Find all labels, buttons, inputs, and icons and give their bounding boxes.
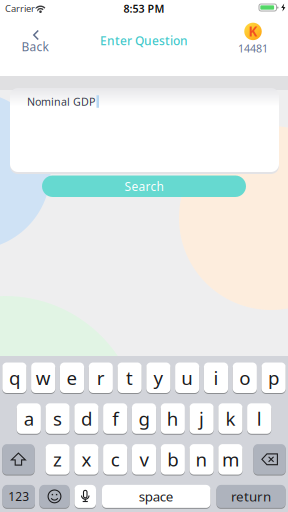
button[interactable]: return <box>216 484 285 508</box>
staticText: w <box>36 365 51 390</box>
button[interactable]: p <box>261 362 286 393</box>
staticText: 14481 <box>238 41 268 55</box>
button[interactable]: n <box>189 444 214 475</box>
staticText: k <box>225 406 235 431</box>
staticText: x <box>81 447 91 472</box>
button[interactable] <box>253 444 286 475</box>
button[interactable]: y <box>146 362 170 393</box>
button[interactable]: k <box>218 403 242 434</box>
staticText: Enter Question <box>100 32 188 48</box>
staticText: l <box>257 406 262 431</box>
staticText: j <box>199 406 204 431</box>
staticText: i <box>213 365 218 390</box>
staticText: m <box>222 447 239 472</box>
button[interactable]: m <box>218 444 242 475</box>
staticText: d <box>81 406 92 431</box>
button[interactable]: h <box>161 403 185 434</box>
button[interactable]: a <box>17 403 41 434</box>
button[interactable]: g <box>132 403 156 434</box>
staticText: Carrier <box>5 2 35 15</box>
button[interactable]: e <box>60 362 84 393</box>
button[interactable]: space <box>102 484 210 508</box>
staticText: b <box>167 447 178 472</box>
staticText: y <box>153 365 163 390</box>
staticText: Search <box>124 178 163 194</box>
staticText: space <box>139 487 174 505</box>
button[interactable]: Nominal GDP <box>10 88 279 172</box>
button[interactable]: u <box>175 362 199 393</box>
button[interactable]: q <box>2 362 26 393</box>
button[interactable]: s <box>45 403 70 434</box>
staticText: u <box>181 365 193 390</box>
staticText: e <box>66 365 77 390</box>
button[interactable]: K <box>235 24 271 54</box>
staticText: Nominal GDP <box>27 94 95 109</box>
button[interactable] <box>74 484 96 508</box>
button[interactable]: x <box>74 444 98 475</box>
staticText: o <box>239 365 250 390</box>
button[interactable]: Search <box>42 175 246 197</box>
button[interactable]: d <box>74 403 98 434</box>
staticText: Back <box>21 38 48 54</box>
button[interactable]: o <box>233 362 257 393</box>
button[interactable]: r <box>89 362 113 393</box>
staticText: z <box>53 447 62 472</box>
button[interactable]: w <box>31 362 55 393</box>
button[interactable]: c <box>103 444 127 475</box>
button[interactable]: j <box>189 403 214 434</box>
staticText: f <box>112 406 118 431</box>
button[interactable]: z <box>45 444 70 475</box>
staticText: c <box>111 447 120 472</box>
button[interactable]: 123 <box>2 484 35 508</box>
staticText: n <box>196 447 208 472</box>
staticText: K <box>248 23 257 40</box>
button[interactable] <box>39 484 69 508</box>
button[interactable]: f <box>103 403 127 434</box>
staticText: r <box>97 365 105 390</box>
button[interactable]: b <box>161 444 185 475</box>
button[interactable]: Back <box>11 27 59 54</box>
button[interactable]: l <box>247 403 271 434</box>
staticText: return <box>231 487 271 505</box>
button[interactable]: t <box>117 362 142 393</box>
staticText: g <box>138 406 149 431</box>
staticText: p <box>268 365 279 390</box>
staticText: a <box>24 406 34 431</box>
staticText: s <box>53 406 62 431</box>
staticText: q <box>9 365 20 390</box>
button[interactable]: v <box>132 444 156 475</box>
button[interactable] <box>2 444 35 475</box>
staticText: h <box>167 406 179 431</box>
button[interactable]: i <box>204 362 228 393</box>
staticText: v <box>139 447 148 472</box>
staticText: t <box>126 365 133 390</box>
staticText: 8:53 PM <box>123 1 164 16</box>
staticText: 123 <box>8 488 29 504</box>
